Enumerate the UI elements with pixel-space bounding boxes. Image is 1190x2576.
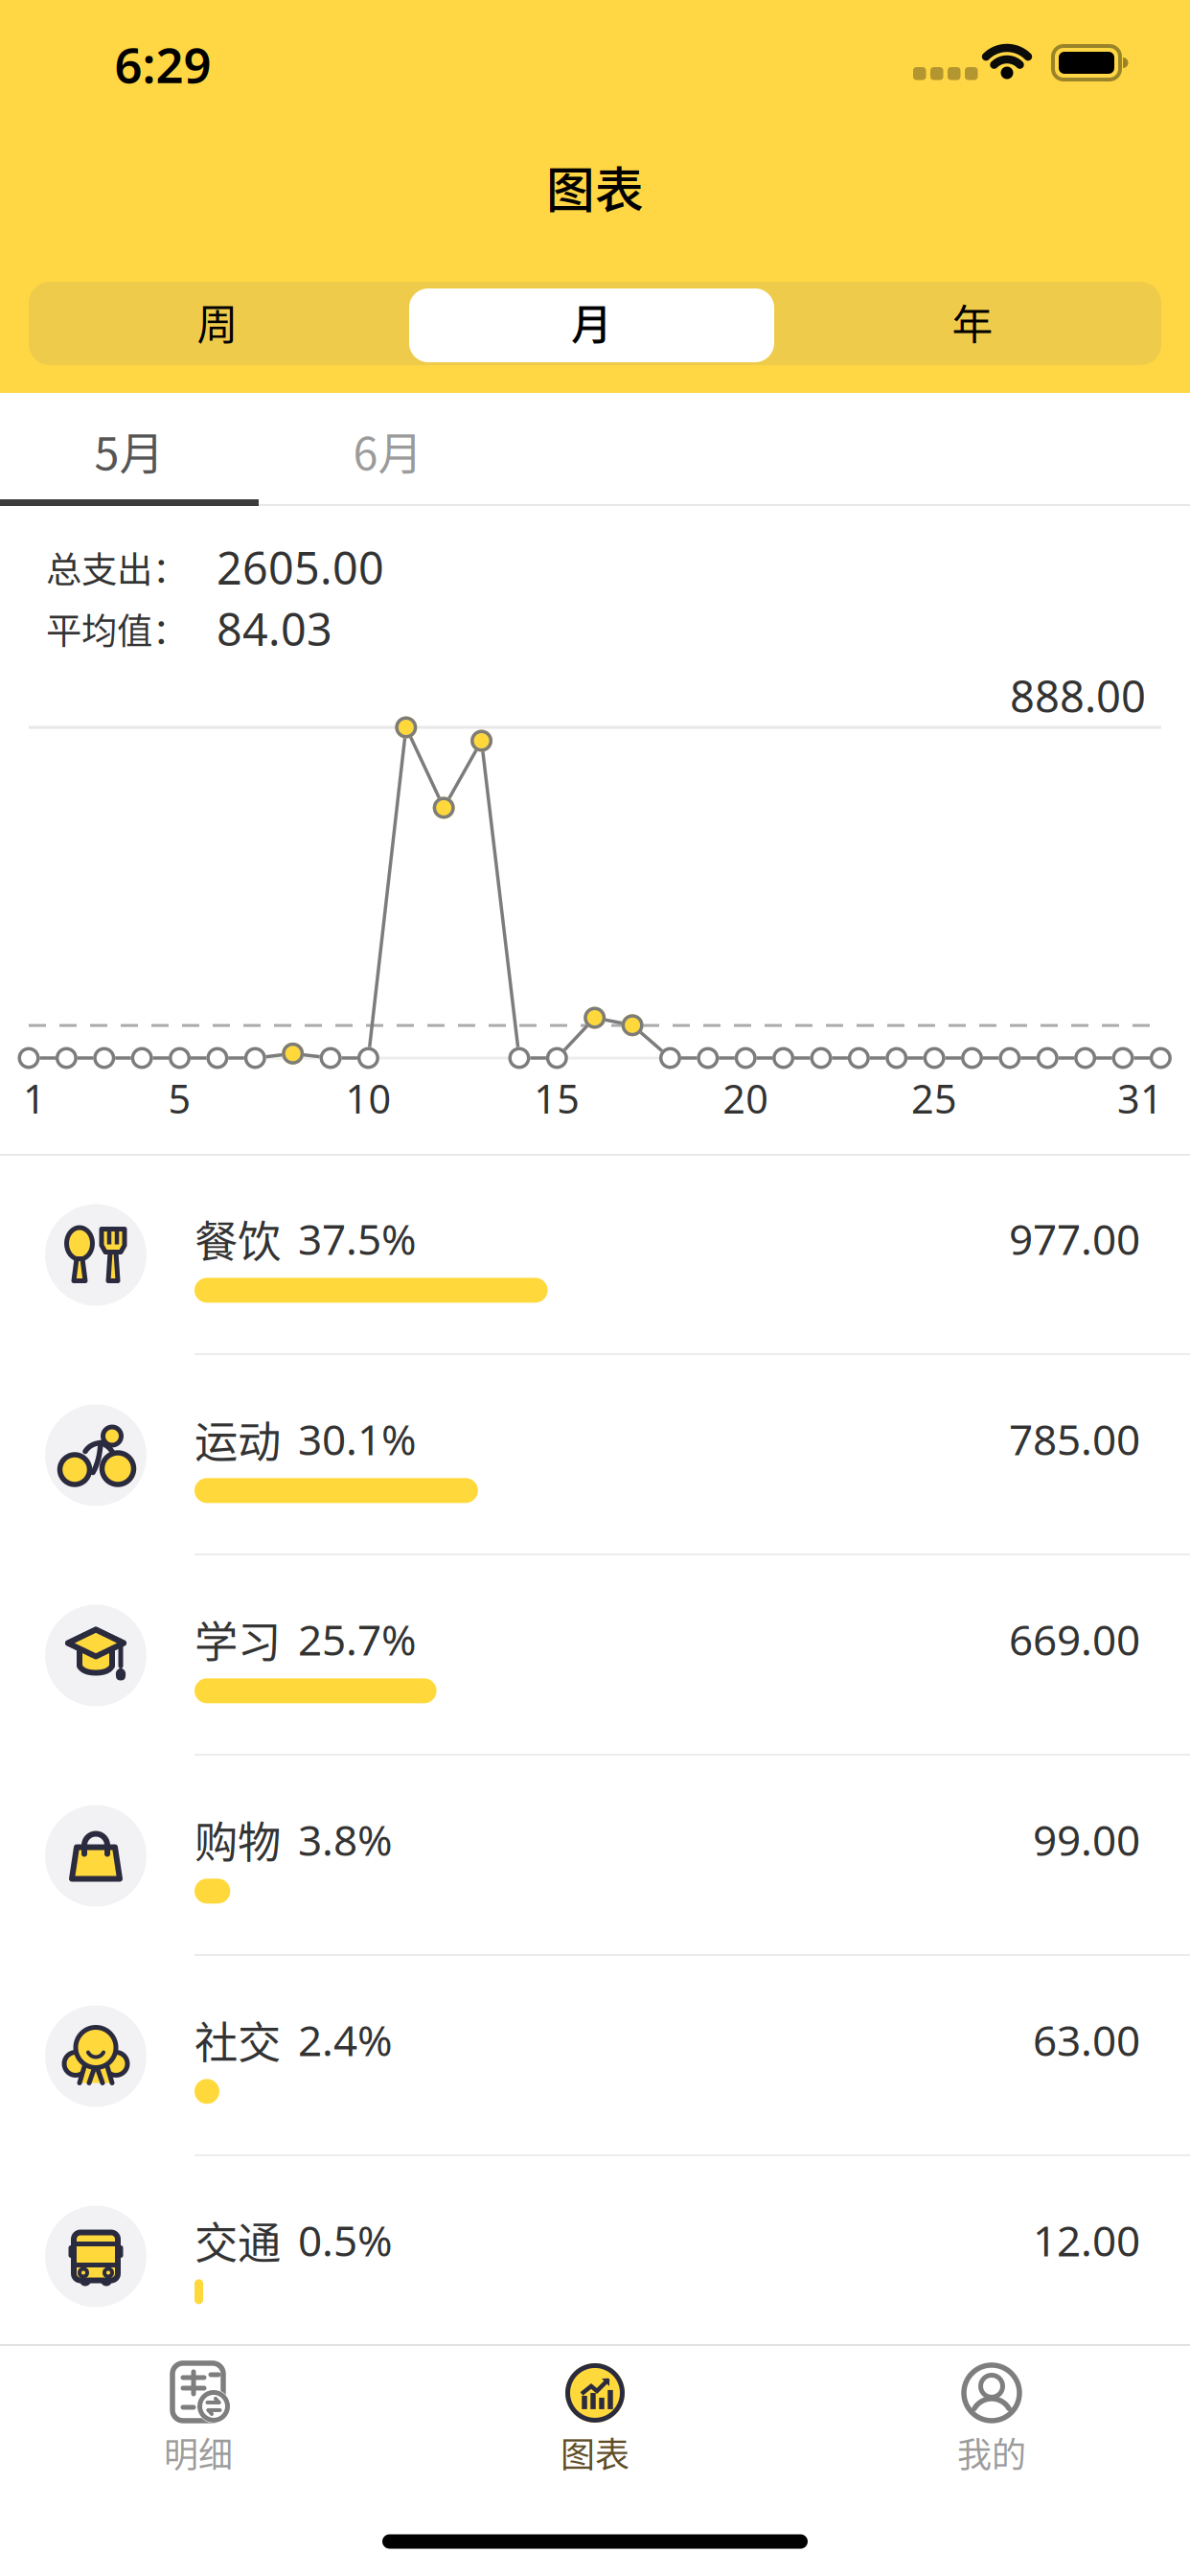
staticText: 25 xyxy=(911,1072,957,1125)
button[interactable]: 运动 xyxy=(0,1355,1190,1555)
staticText: 0.5% xyxy=(298,2212,393,2268)
button[interactable]: 月 xyxy=(403,282,780,369)
staticText: 3.8% xyxy=(298,1812,393,1868)
staticText: 30.1% xyxy=(298,1411,417,1467)
staticText: 10 xyxy=(345,1072,391,1125)
staticText: 图表 xyxy=(546,152,644,222)
button[interactable]: 餐饮 xyxy=(0,1155,1190,1355)
staticText: 月 xyxy=(571,292,612,352)
staticText: 977.00 xyxy=(1009,1211,1140,1267)
button[interactable]: 6月 xyxy=(259,397,517,504)
staticText: 社交 xyxy=(195,2008,281,2071)
staticText: 明细 xyxy=(164,2427,233,2477)
staticText: 12.00 xyxy=(1033,2212,1140,2268)
staticText: 2605.00 xyxy=(217,538,384,597)
staticText: 餐饮 xyxy=(195,1207,281,1270)
button[interactable]: 我的 xyxy=(848,2342,1135,2495)
staticText: 6:29 xyxy=(114,32,211,97)
staticText: 周 xyxy=(197,292,238,352)
button[interactable]: 学习 xyxy=(0,1555,1190,1756)
staticText: 图表 xyxy=(561,2427,629,2477)
staticText: 总支出： xyxy=(46,541,188,593)
button[interactable]: 年 xyxy=(784,278,1161,366)
staticText: 我的 xyxy=(957,2427,1026,2477)
staticText: 学习 xyxy=(195,1608,281,1671)
staticText: 15 xyxy=(534,1072,580,1125)
button[interactable]: 5月 xyxy=(0,397,259,504)
staticText: 37.5% xyxy=(298,1211,417,1267)
button[interactable]: 图表 xyxy=(451,2342,739,2495)
staticText: 交通 xyxy=(195,2209,281,2272)
staticText: 年 xyxy=(952,292,993,352)
button[interactable]: 社交 xyxy=(0,1956,1190,2156)
staticText: 2.4% xyxy=(298,2012,393,2068)
staticText: 5月 xyxy=(94,418,164,483)
staticText: 购物 xyxy=(195,1808,281,1871)
button[interactable]: 交通 xyxy=(0,2156,1190,2357)
staticText: 平均值： xyxy=(46,603,188,655)
staticText: 1 xyxy=(23,1072,46,1125)
staticText: 运动 xyxy=(195,1408,281,1470)
staticText: 6月 xyxy=(353,418,423,483)
staticText: 888.00 xyxy=(1010,667,1146,725)
staticText: 5 xyxy=(168,1072,191,1125)
staticText: 31 xyxy=(1117,1072,1163,1125)
staticText: 25.7% xyxy=(298,1611,417,1667)
staticText: 84.03 xyxy=(217,599,332,658)
staticText: 63.00 xyxy=(1033,2012,1140,2068)
staticText: 669.00 xyxy=(1009,1611,1140,1667)
button[interactable]: 周 xyxy=(29,278,406,366)
staticText: 20 xyxy=(723,1072,769,1125)
staticText: 99.00 xyxy=(1033,1812,1140,1868)
button[interactable]: 明细 xyxy=(55,2342,342,2495)
staticText: 785.00 xyxy=(1009,1411,1140,1467)
button[interactable]: 购物 xyxy=(0,1756,1190,1956)
